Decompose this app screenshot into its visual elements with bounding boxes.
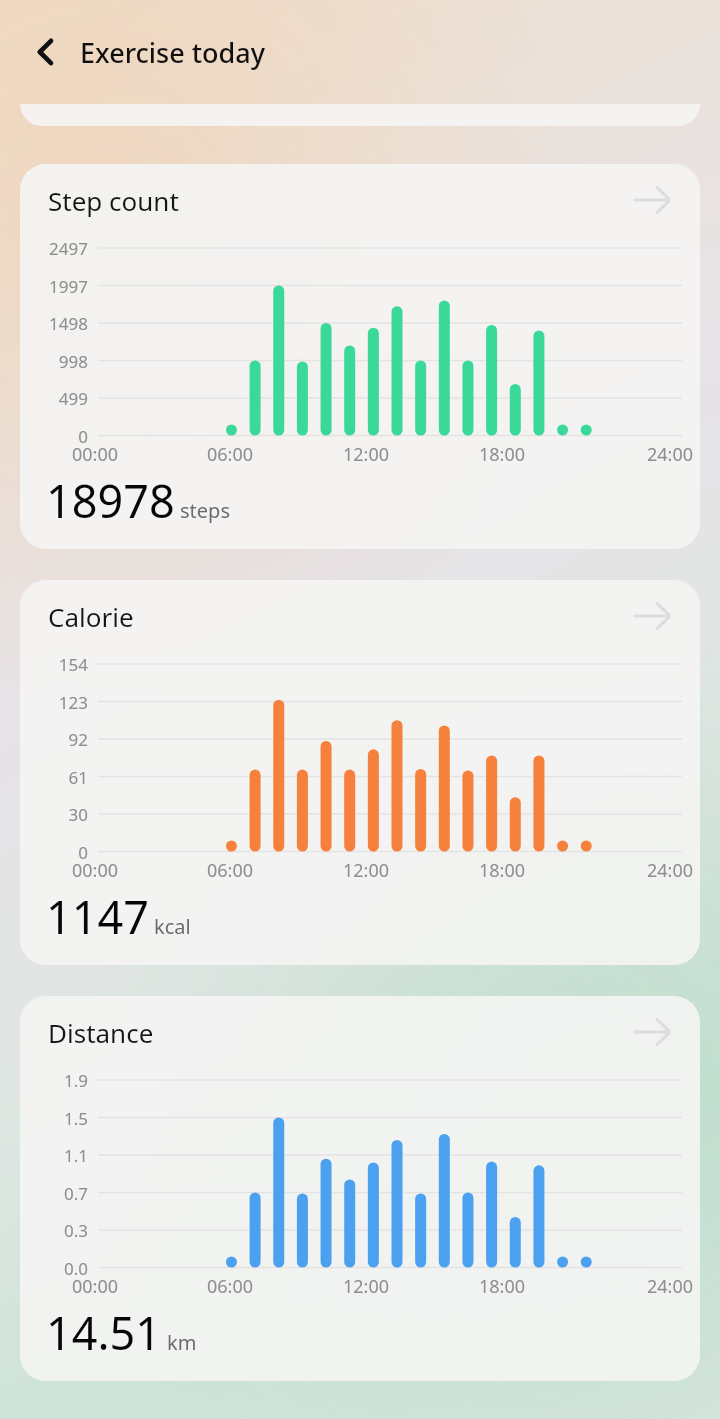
staticText: 18:00 bbox=[479, 442, 526, 467]
staticText: 0.7 bbox=[63, 1182, 88, 1204]
staticText: 06:00 bbox=[207, 858, 254, 883]
staticText: 2497 bbox=[49, 237, 88, 259]
staticText: 123 bbox=[58, 691, 88, 713]
staticText: 1147 bbox=[46, 886, 149, 947]
staticText: 24:00 bbox=[647, 858, 694, 883]
button[interactable]: Open Calorie details bbox=[624, 588, 680, 644]
staticText: 1.9 bbox=[63, 1069, 88, 1091]
staticText: 00:00 bbox=[72, 858, 119, 883]
staticText: Calorie bbox=[48, 599, 134, 634]
staticText: 1.1 bbox=[63, 1144, 88, 1166]
staticText: 1.5 bbox=[63, 1107, 88, 1129]
staticText: 18978 bbox=[46, 470, 175, 531]
staticText: 998 bbox=[58, 350, 88, 372]
staticText: 06:00 bbox=[207, 442, 254, 467]
button[interactable]: Step count bbox=[20, 164, 700, 549]
staticText: 0 bbox=[78, 425, 88, 447]
staticText: 1997 bbox=[49, 275, 88, 297]
staticText: 24:00 bbox=[647, 442, 694, 467]
staticText: 30 bbox=[68, 803, 88, 825]
staticText: 0 bbox=[78, 841, 88, 863]
staticText: 00:00 bbox=[72, 442, 119, 467]
button[interactable]: Distance bbox=[20, 996, 700, 1381]
staticText: 61 bbox=[68, 766, 88, 788]
staticText: steps bbox=[180, 497, 230, 524]
button[interactable]: Open Step count details bbox=[624, 172, 680, 228]
staticText: kcal bbox=[154, 913, 191, 940]
staticText: 24:00 bbox=[647, 1274, 694, 1299]
staticText: 0.3 bbox=[63, 1219, 88, 1241]
button[interactable]: Open Distance details bbox=[624, 1004, 680, 1060]
staticText: 14.51 bbox=[46, 1302, 162, 1363]
staticText: 12:00 bbox=[343, 442, 390, 467]
button[interactable] bbox=[20, 104, 700, 126]
staticText: 00:00 bbox=[72, 1274, 119, 1299]
staticText: 18:00 bbox=[479, 858, 526, 883]
staticText: 18:00 bbox=[479, 1274, 526, 1299]
staticText: Step count bbox=[48, 183, 179, 218]
staticText: 499 bbox=[58, 387, 88, 409]
staticText: Distance bbox=[48, 1015, 154, 1050]
staticText: 154 bbox=[58, 653, 88, 675]
staticText: Exercise today bbox=[80, 34, 266, 71]
staticText: km bbox=[167, 1329, 197, 1356]
button[interactable]: Calorie bbox=[20, 580, 700, 965]
button[interactable]: Back bbox=[14, 20, 78, 84]
staticText: 0.0 bbox=[63, 1257, 88, 1279]
staticText: 06:00 bbox=[207, 1274, 254, 1299]
staticText: 12:00 bbox=[343, 1274, 390, 1299]
staticText: 12:00 bbox=[343, 858, 390, 883]
staticText: 92 bbox=[68, 728, 88, 750]
staticText: 1498 bbox=[49, 312, 88, 334]
